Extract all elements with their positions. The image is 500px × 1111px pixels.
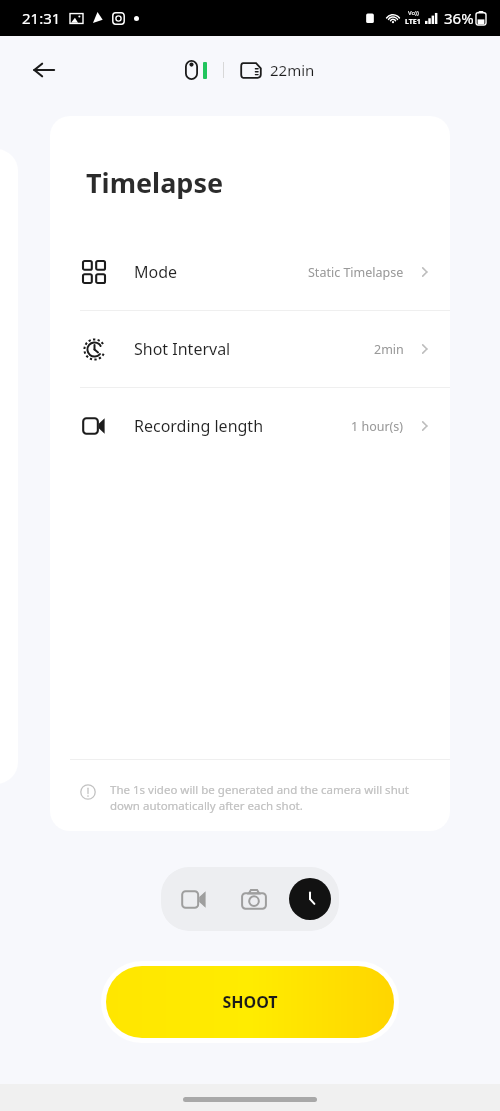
button[interactable]: Video mode	[169, 874, 219, 924]
button[interactable]: Battery status	[183, 54, 209, 86]
button[interactable]: Mode	[50, 234, 450, 310]
staticText: Mode	[134, 261, 178, 283]
staticText: The 1s video will be generated and the c…	[110, 782, 428, 813]
staticText: 2min	[374, 341, 404, 358]
button[interactable]: SHOOT	[106, 966, 394, 1038]
staticText: 21:31	[22, 8, 61, 28]
button[interactable]: Storage remaining	[238, 54, 317, 86]
staticText: 1 hour(s)	[351, 418, 404, 435]
staticText: Recording length	[134, 415, 264, 437]
staticText: Static Timelapse	[308, 264, 404, 281]
button[interactable]: Timelapse mode	[289, 878, 331, 920]
staticText: Shot Interval	[134, 338, 231, 360]
staticText: Timelapse	[86, 164, 224, 201]
button[interactable]: Photo mode	[229, 874, 279, 924]
staticText: 22min	[270, 60, 315, 80]
staticText: LTE1	[405, 17, 421, 27]
staticText: Vo))	[408, 9, 419, 17]
staticText: 36%	[444, 8, 474, 28]
staticText: SHOOT	[222, 991, 278, 1013]
button[interactable]: Recording length	[50, 388, 450, 464]
button[interactable]: Shot Interval	[50, 311, 450, 387]
button[interactable]: Back	[22, 48, 66, 92]
